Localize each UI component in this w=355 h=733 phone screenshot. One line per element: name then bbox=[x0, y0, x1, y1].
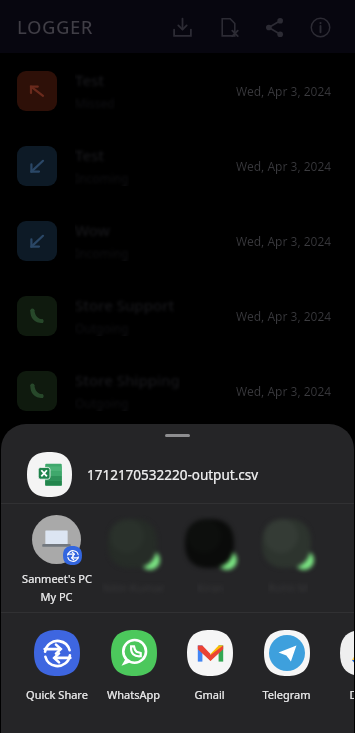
staticText: Store Shipping bbox=[75, 370, 180, 390]
button[interactable]: Share bbox=[251, 4, 297, 50]
staticText: Drive bbox=[349, 687, 354, 702]
button[interactable]: Wow bbox=[0, 203, 355, 278]
button[interactable]: Download bbox=[159, 4, 205, 50]
staticText: Wed, Apr 3, 2024 bbox=[236, 383, 332, 399]
button[interactable]: Info bbox=[297, 4, 343, 50]
button[interactable]: Quick Share bbox=[18, 630, 95, 702]
button[interactable]: Sanmeet's PC bbox=[18, 515, 95, 604]
staticText: Quick Share bbox=[26, 687, 88, 702]
staticText: Wed, Apr 3, 2024 bbox=[236, 308, 332, 324]
button[interactable]: Delete file bbox=[205, 4, 251, 50]
button[interactable]: Kiran bbox=[172, 515, 249, 595]
staticText: Store Support bbox=[75, 295, 175, 315]
staticText: 1712170532220-output.csv bbox=[87, 466, 259, 484]
staticText: LOGGER bbox=[17, 14, 93, 39]
staticText: WhatsApp bbox=[107, 687, 160, 702]
button[interactable]: Rohit M bbox=[249, 515, 326, 595]
staticText: My PC bbox=[40, 589, 73, 604]
staticText: Wed, Apr 3, 2024 bbox=[236, 233, 332, 249]
button[interactable]: Drive bbox=[324, 630, 354, 702]
button[interactable]: Test bbox=[0, 53, 355, 128]
staticText: Sanmeet's PC bbox=[22, 571, 92, 586]
button[interactable]: Store Support bbox=[0, 278, 355, 353]
staticText: Test bbox=[75, 145, 105, 165]
button[interactable]: Telegram bbox=[248, 630, 325, 702]
staticText: Gmail bbox=[194, 687, 225, 702]
button[interactable]: Nitin Kumar bbox=[95, 515, 172, 595]
button[interactable]: WhatsApp bbox=[95, 630, 172, 702]
staticText: Test bbox=[75, 70, 105, 90]
button[interactable]: Test bbox=[0, 128, 355, 203]
staticText: Wed, Apr 3, 2024 bbox=[236, 83, 332, 99]
button[interactable]: 1712170532220-output.csv bbox=[1, 446, 354, 503]
staticText: Wed, Apr 3, 2024 bbox=[236, 158, 332, 174]
staticText: Telegram bbox=[262, 687, 311, 702]
button[interactable]: Store Shipping bbox=[0, 353, 355, 428]
button[interactable]: Gmail bbox=[171, 630, 248, 702]
staticText: Wow bbox=[75, 220, 110, 240]
